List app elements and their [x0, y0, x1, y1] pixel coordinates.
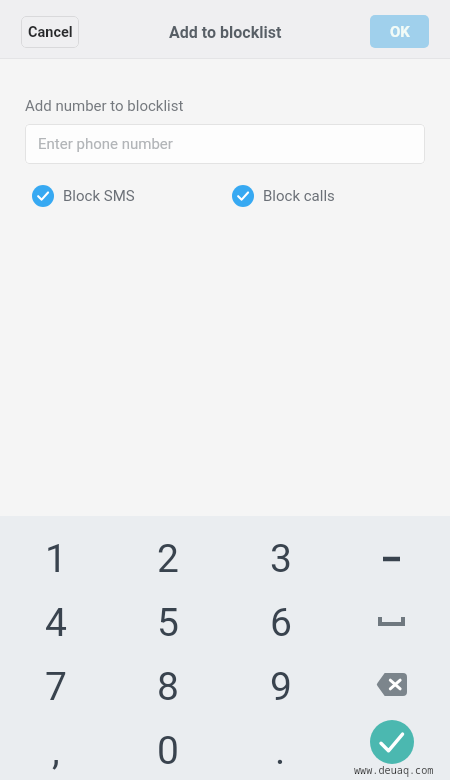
staticText: Block calls: [263, 187, 335, 205]
button[interactable]: OK: [370, 15, 429, 48]
staticText: Add to blocklist: [169, 23, 282, 42]
button[interactable]: 4: [0, 591, 112, 655]
staticText: 7: [45, 664, 67, 710]
staticText: 0: [157, 728, 179, 774]
button[interactable]: Block calls: [232, 185, 335, 207]
button[interactable]: Enter phone number: [25, 124, 425, 164]
staticText: Add number to blocklist: [25, 97, 184, 115]
staticText: 4: [45, 600, 67, 646]
staticText: www.deuaq.com: [354, 763, 434, 777]
button[interactable]: 5: [112, 591, 224, 655]
staticText: 3: [270, 536, 292, 582]
staticText: 5: [157, 600, 179, 646]
button[interactable]: 2: [112, 527, 224, 591]
button[interactable]: Cancel: [21, 16, 79, 48]
staticText: ,: [52, 728, 60, 774]
staticText: 9: [270, 664, 292, 710]
button[interactable]: .: [224, 719, 337, 780]
button[interactable]: ,: [0, 719, 112, 780]
staticText: 1: [45, 536, 67, 582]
button[interactable]: 6: [224, 591, 337, 655]
button[interactable]: 3: [224, 527, 337, 591]
staticText: .: [275, 728, 286, 774]
button[interactable]: 0: [112, 719, 224, 780]
button[interactable]: Backspace: [337, 655, 450, 719]
staticText: Block SMS: [63, 187, 135, 205]
staticText: OK: [390, 23, 410, 41]
staticText: 6: [270, 600, 292, 646]
button[interactable]: 9: [224, 655, 337, 719]
button[interactable]: Space: [337, 591, 450, 655]
button[interactable]: 8: [112, 655, 224, 719]
button[interactable]: 1: [0, 527, 112, 591]
staticText: Enter phone number: [38, 135, 173, 153]
staticText: Cancel: [28, 24, 73, 41]
button[interactable]: 7: [0, 655, 112, 719]
button[interactable]: Dash: [337, 527, 450, 591]
button[interactable]: Done: [337, 719, 450, 780]
staticText: 8: [157, 664, 179, 710]
button[interactable]: Block SMS: [32, 185, 135, 207]
staticText: 2: [157, 536, 179, 582]
